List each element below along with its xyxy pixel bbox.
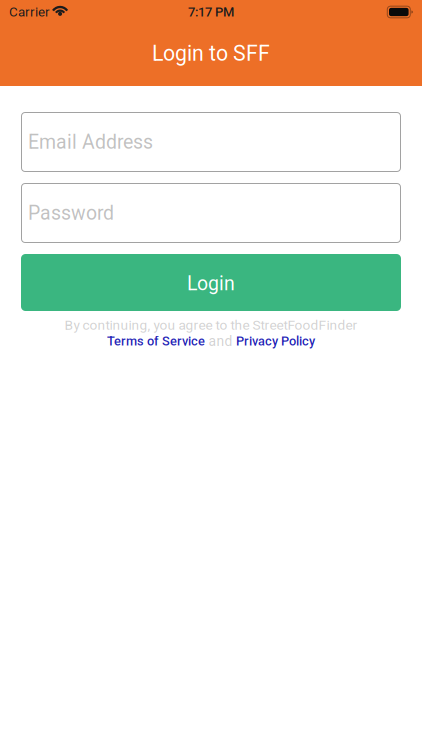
button[interactable]: Login [21, 254, 401, 311]
staticText: Privacy Policy [236, 334, 315, 349]
button[interactable]: Password [21, 183, 401, 243]
staticText: Login to SFF [152, 41, 270, 66]
staticText: Email Address [28, 131, 153, 153]
button[interactable]: Privacy Policy [236, 334, 315, 349]
staticText: 7:17 PM [188, 4, 234, 20]
staticText: Login [187, 272, 235, 295]
staticText: Carrier [9, 4, 50, 20]
button[interactable]: Terms of Service [107, 334, 205, 349]
staticText: Password [28, 202, 114, 224]
button[interactable]: Email Address [21, 112, 401, 172]
staticText: and [208, 333, 232, 349]
staticText: By continuing, you agree to the StreetFo… [64, 317, 357, 333]
staticText: Terms of Service [107, 334, 205, 349]
